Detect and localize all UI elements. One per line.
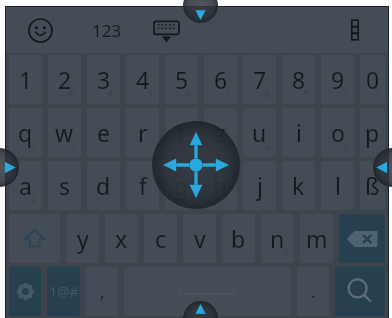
button[interactable]: 3: [87, 55, 120, 104]
button[interactable]: 5: [165, 55, 198, 104]
staticText: g: [174, 170, 189, 201]
button[interactable]: Move cursor: [152, 121, 240, 209]
button[interactable]: ß: [360, 161, 385, 210]
staticText: z: [215, 117, 226, 148]
staticText: v: [194, 223, 206, 254]
button[interactable]: More options: [338, 13, 372, 47]
staticText: d: [96, 170, 111, 201]
button[interactable]: 2: [48, 55, 81, 104]
staticText: 8: [292, 64, 306, 95]
staticText: w: [55, 117, 74, 148]
button[interactable]: j: [243, 161, 276, 210]
staticText: m: [306, 223, 328, 254]
staticText: t: [177, 117, 186, 148]
button[interactable]: s: [48, 161, 81, 210]
staticText: ä: [31, 194, 36, 205]
button[interactable]: 4: [126, 55, 159, 104]
button[interactable]: p: [360, 108, 385, 157]
button[interactable]: a: [9, 161, 42, 210]
button[interactable]: x: [105, 214, 138, 263]
button[interactable]: r: [126, 108, 159, 157]
button[interactable]: u: [243, 108, 276, 157]
button[interactable]: v: [183, 214, 216, 263]
button[interactable]: 6: [204, 55, 237, 104]
button[interactable]: 0: [360, 55, 385, 104]
staticText: &: [264, 88, 270, 99]
staticText: .: [311, 280, 316, 303]
staticText: n: [270, 223, 285, 254]
button[interactable]: e: [87, 108, 120, 157]
staticText: ö: [343, 141, 348, 152]
button[interactable]: q: [9, 108, 42, 157]
staticText: ,: [100, 280, 105, 303]
staticText: 6: [214, 64, 228, 95]
staticText: 123: [92, 19, 122, 42]
staticText: a: [19, 170, 32, 201]
staticText: l: [335, 170, 341, 201]
staticText: u: [252, 117, 267, 148]
button[interactable]: Hide keyboard: [146, 10, 186, 50]
button[interactable]: c: [144, 214, 177, 263]
button[interactable]: Shift: [9, 214, 60, 263]
button[interactable]: Search: [335, 267, 385, 316]
button[interactable]: 1: [9, 55, 42, 104]
staticText: $: [148, 88, 153, 99]
staticText: k: [292, 170, 305, 201]
button[interactable]: 7: [243, 55, 276, 104]
button[interactable]: Backspace: [339, 214, 385, 263]
staticText: 0: [366, 64, 380, 95]
button[interactable]: Scroll: [373, 148, 392, 187]
button[interactable]: y: [66, 214, 99, 263]
button[interactable]: 123: [84, 7, 130, 53]
button[interactable]: Space: [124, 267, 291, 316]
staticText: ?: [284, 247, 288, 258]
button[interactable]: k: [282, 161, 315, 210]
button[interactable]: Scroll: [183, 301, 218, 318]
button[interactable]: z: [204, 108, 237, 157]
button[interactable]: 9: [321, 55, 354, 104]
button[interactable]: Settings: [9, 267, 41, 316]
staticText: i: [296, 117, 302, 148]
button[interactable]: Symbols: [47, 267, 80, 316]
staticText: 5: [175, 64, 189, 95]
button[interactable]: 8: [282, 55, 315, 104]
staticText: %: [185, 88, 192, 99]
button[interactable]: m: [300, 214, 333, 263]
staticText: s: [59, 170, 71, 201]
button[interactable]: f: [126, 161, 159, 210]
button[interactable]: g: [165, 161, 198, 210]
staticText: b: [231, 223, 246, 254]
staticText: x: [115, 223, 128, 254]
staticText: ]: [72, 141, 75, 152]
staticText: p: [365, 117, 380, 148]
button[interactable]: i: [282, 108, 315, 157]
button[interactable]: t: [165, 108, 198, 157]
button[interactable]: b: [222, 214, 255, 263]
button[interactable]: Emoji: [22, 12, 58, 48]
button[interactable]: Scroll: [0, 148, 19, 187]
button[interactable]: w: [48, 108, 81, 157]
staticText: ): [376, 88, 379, 99]
staticText: q: [18, 117, 33, 148]
staticText: o: [331, 117, 345, 148]
button[interactable]: h: [204, 161, 237, 210]
button[interactable]: o: [321, 108, 354, 157]
staticText: #: [108, 88, 114, 99]
button[interactable]: n: [261, 214, 294, 263]
staticText: /: [324, 247, 327, 258]
staticText: 3: [97, 64, 111, 95]
staticText: (: [345, 88, 348, 99]
button[interactable]: l: [321, 161, 354, 210]
staticText: f: [139, 170, 147, 201]
staticText: @: [67, 88, 75, 99]
button[interactable]: d: [87, 161, 120, 210]
staticText: 1@#: [49, 282, 79, 301]
button[interactable]: Scroll: [183, 0, 218, 23]
staticText: c: [155, 223, 167, 254]
